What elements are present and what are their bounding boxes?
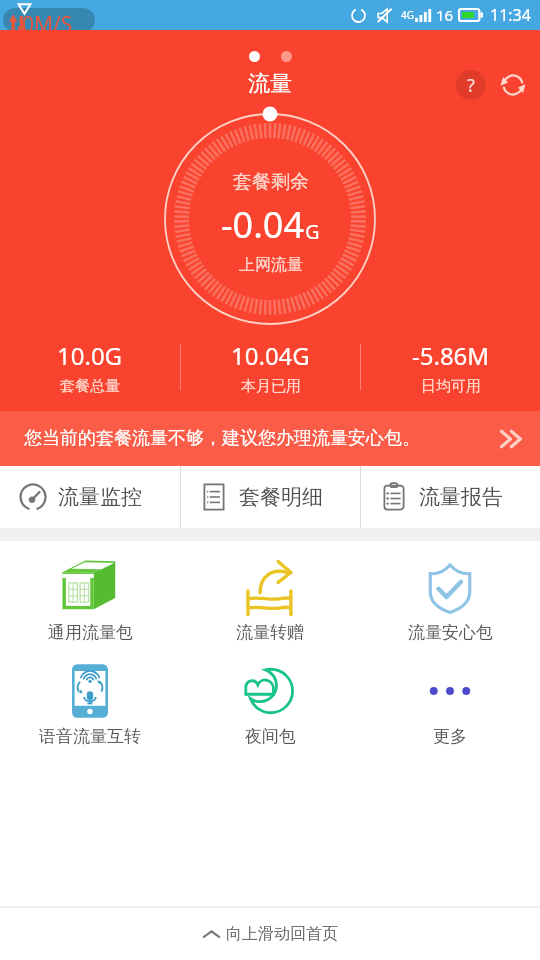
staticText: 您当前的套餐流量不够，建议您办理流量安心包。 <box>24 427 496 450</box>
staticText: 本月已用 <box>241 377 301 396</box>
staticText: 语音流量互转 <box>39 726 141 747</box>
button[interactable]: 更多 <box>360 645 540 749</box>
button[interactable]: Refresh <box>498 70 528 100</box>
staticText: 日均可用 <box>421 377 481 396</box>
staticText: 流量安心包 <box>408 622 493 643</box>
button[interactable]: 流量转赠 <box>180 541 360 645</box>
button[interactable]: 夜间包 <box>180 645 360 749</box>
staticText: 16 <box>436 5 454 25</box>
button[interactable]: Help <box>456 70 486 100</box>
staticText: 通用流量包 <box>48 622 133 643</box>
staticText: 11:34 <box>490 4 531 26</box>
staticText: 10.0G <box>57 339 123 372</box>
staticText: 夜间包 <box>245 726 296 747</box>
button[interactable]: 流量监控 <box>0 466 180 528</box>
staticText: -5.86M <box>412 339 490 372</box>
staticText: 向上滑动回首页 <box>226 924 338 944</box>
staticText: -0.04 <box>221 200 305 249</box>
staticText: 上网流量 <box>239 255 303 275</box>
button[interactable]: 语音流量互转 <box>0 645 180 749</box>
staticText: 套餐总量 <box>60 377 120 396</box>
button[interactable]: 通用流量包 <box>0 541 180 645</box>
button[interactable]: 向上滑动回首页 <box>0 908 540 960</box>
staticText: 0M/S <box>22 10 73 39</box>
button[interactable]: 流量报告 <box>361 466 540 528</box>
staticText: 套餐明细 <box>239 484 323 510</box>
button[interactable]: 10.0G <box>0 336 180 398</box>
staticText: G <box>305 218 320 245</box>
button[interactable]: 流量安心包 <box>360 541 540 645</box>
button[interactable]: 10.04G <box>181 336 360 398</box>
staticText: 更多 <box>433 726 467 747</box>
staticText: ? <box>467 73 475 98</box>
button[interactable]: 套餐明细 <box>181 466 360 528</box>
staticText: 流量转赠 <box>236 622 304 643</box>
staticText: 4G <box>401 8 414 22</box>
button[interactable]: 您当前的套餐流量不够，建议您办理流量安心包。 <box>0 411 540 466</box>
staticText: 套餐剩余 <box>233 170 309 194</box>
staticText: 流量监控 <box>58 484 142 510</box>
staticText: 流量报告 <box>419 484 503 510</box>
button[interactable]: -5.86M <box>361 336 540 398</box>
staticText: 10.04G <box>231 339 310 372</box>
staticText: 流量 <box>248 70 292 98</box>
